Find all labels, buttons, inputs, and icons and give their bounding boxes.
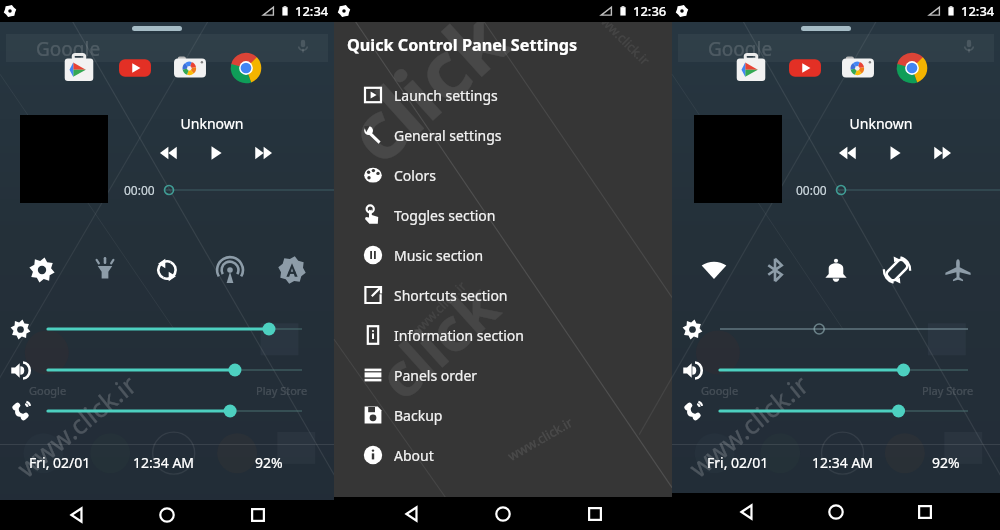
button[interactable] — [682, 318, 968, 340]
staticText: click — [360, 265, 515, 417]
button[interactable]: Recents — [911, 498, 939, 526]
button[interactable]: YouTube — [788, 51, 822, 85]
staticText: Launch settings — [394, 86, 498, 105]
button[interactable] — [10, 400, 302, 422]
staticText: Play Store — [922, 383, 974, 398]
button[interactable]: Camera — [841, 51, 875, 85]
button[interactable] — [682, 400, 968, 422]
button[interactable]: YouTube — [118, 51, 152, 85]
staticText: Panels order — [394, 366, 478, 385]
button[interactable] — [10, 359, 302, 381]
staticText: Play Store — [256, 383, 308, 398]
button[interactable]: Panels order — [334, 355, 672, 395]
staticText: 12:34 — [295, 2, 329, 20]
staticText: 00:00 — [124, 182, 155, 198]
button[interactable]: Fri, 02/01 — [29, 453, 91, 472]
button[interactable]: Auto brightness — [278, 256, 306, 284]
staticText: Google — [29, 383, 67, 398]
button[interactable]: Home — [489, 500, 517, 528]
staticText: 12:36 — [633, 2, 667, 20]
button[interactable]: Home — [153, 501, 181, 529]
button[interactable]: Information section — [334, 315, 672, 355]
button[interactable]: 12:34 AM — [812, 453, 874, 472]
staticText: www.click.ir — [681, 367, 815, 484]
button[interactable]: Sync — [153, 256, 181, 284]
button[interactable]: Previous — [830, 139, 858, 167]
button[interactable]: Hotspot — [216, 256, 244, 284]
button[interactable]: Next — [253, 139, 281, 167]
button[interactable]: Toggles section — [334, 195, 672, 235]
button[interactable]: Chrome — [895, 51, 929, 85]
button[interactable]: Wi-Fi — [700, 256, 728, 284]
staticText: www.click.ir — [504, 413, 576, 465]
button[interactable] — [10, 318, 302, 340]
button[interactable]: Play — [202, 139, 230, 167]
button[interactable]: 12:34 AM — [133, 453, 195, 472]
button[interactable]: Previous — [151, 139, 179, 167]
staticText: Toggles section — [394, 206, 496, 225]
staticText: Unknown — [120, 114, 304, 133]
staticText: Unknown — [792, 114, 970, 133]
button[interactable]: Backup — [334, 395, 672, 435]
staticText: Google — [701, 383, 739, 398]
staticText: www.click.ir — [9, 367, 143, 484]
staticText: Shortcuts section — [394, 286, 508, 305]
staticText: Information section — [394, 326, 524, 345]
staticText: 00:00 — [796, 182, 827, 198]
button[interactable]: General settings — [334, 115, 672, 155]
button[interactable]: Bluetooth — [761, 256, 789, 284]
button[interactable]: Back — [398, 500, 426, 528]
staticText: Google — [36, 36, 101, 62]
staticText: www.click.ir — [590, 5, 654, 69]
button[interactable]: Flashlight — [91, 256, 119, 284]
button[interactable]: Camera — [173, 51, 207, 85]
button[interactable]: Recents — [244, 501, 272, 529]
staticText: Backup — [394, 406, 443, 425]
button[interactable]: 92% — [255, 453, 283, 472]
button[interactable]: Shortcuts section — [334, 275, 672, 315]
button[interactable]: Music section — [334, 235, 672, 275]
button[interactable]: 92% — [932, 453, 960, 472]
button[interactable]: Notifications — [822, 256, 850, 284]
button[interactable]: Settings — [28, 256, 56, 284]
staticText: click — [323, 0, 529, 185]
button[interactable]: Back — [63, 501, 91, 529]
button[interactable]: Play Store — [62, 51, 96, 85]
button[interactable]: About — [334, 435, 672, 475]
button[interactable] — [682, 359, 968, 381]
button[interactable]: Fri, 02/01 — [707, 453, 769, 472]
staticText: Music section — [394, 246, 484, 265]
button[interactable]: Next — [932, 139, 960, 167]
staticText: 12:34 — [961, 2, 995, 20]
button[interactable]: Play Store — [734, 51, 768, 85]
staticText: www.click.ir — [406, 277, 470, 341]
staticText: Google — [708, 36, 773, 62]
staticText: Quick Control Panel Settings — [347, 34, 578, 56]
button[interactable]: Launch settings — [334, 75, 672, 115]
button[interactable]: Recents — [581, 500, 609, 528]
button[interactable]: Chrome — [229, 51, 263, 85]
button[interactable]: Play — [881, 139, 909, 167]
button[interactable]: Home — [822, 498, 850, 526]
button[interactable]: Auto rotate — [883, 256, 911, 284]
staticText: General settings — [394, 126, 502, 145]
button[interactable]: Airplane mode — [944, 256, 972, 284]
staticText: Colors — [394, 166, 436, 185]
button[interactable]: Back — [733, 498, 761, 526]
button[interactable]: Colors — [334, 155, 672, 195]
staticText: About — [394, 446, 434, 465]
